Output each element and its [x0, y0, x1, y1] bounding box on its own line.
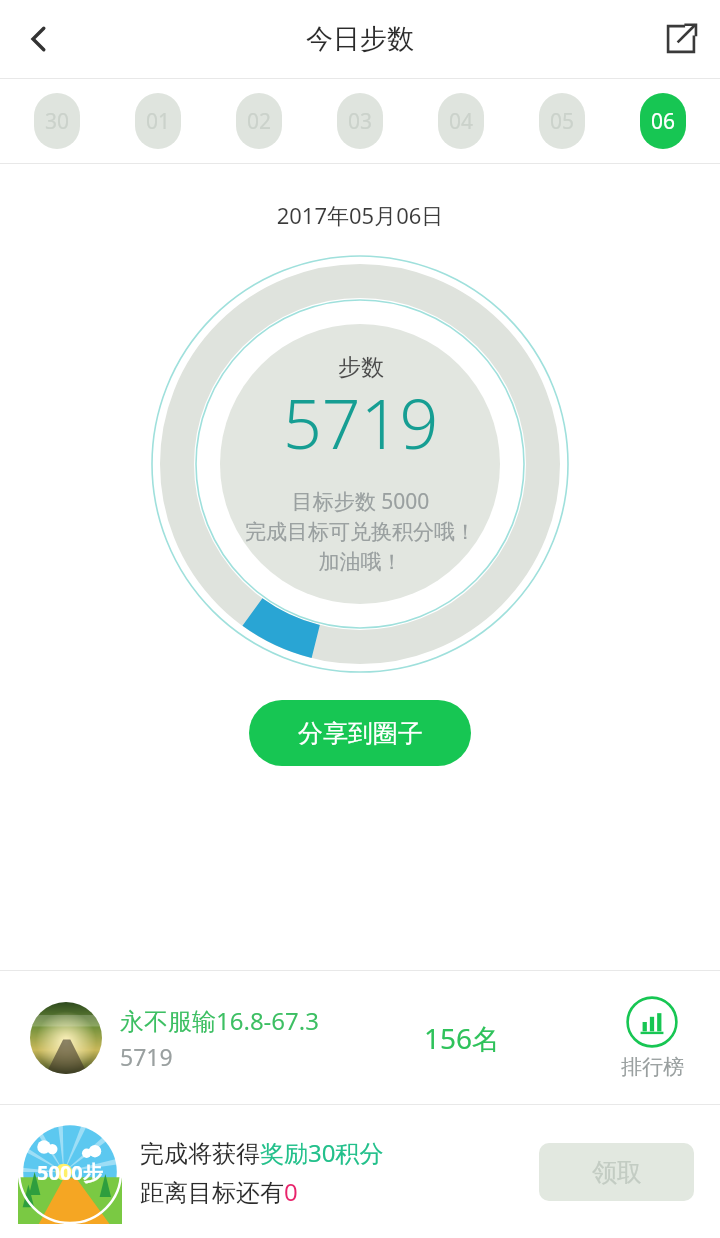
button[interactable]: 02: [236, 93, 282, 149]
staticText: 01: [146, 107, 171, 136]
staticText: 5000步: [37, 1159, 103, 1186]
staticText: 距离目标还有0: [140, 1175, 298, 1208]
staticText: 今日步数: [306, 22, 414, 56]
button[interactable]: 排行榜: [606, 996, 698, 1080]
button[interactable]: 04: [438, 93, 484, 149]
staticText: 04: [449, 107, 474, 136]
button[interactable]: 领取: [539, 1143, 694, 1201]
staticText: 5719: [120, 1041, 173, 1072]
staticText: 分享到圈子: [298, 718, 423, 749]
button[interactable]: 05: [539, 93, 585, 149]
staticText: 02: [247, 107, 272, 136]
staticText: 03: [348, 107, 373, 136]
staticText: 5719: [283, 376, 439, 469]
staticText: 30: [45, 107, 70, 136]
staticText: 156名: [424, 1019, 501, 1057]
staticText: 2017年05月06日: [0, 200, 720, 230]
staticText: 05: [550, 107, 575, 136]
staticText: 目标步数 5000 完成目标可兑换积分哦！ 加油哦！: [245, 487, 476, 576]
button[interactable]: Back: [0, 0, 78, 78]
button[interactable]: 03: [337, 93, 383, 149]
button[interactable]: 30: [34, 93, 80, 149]
button[interactable]: Share: [642, 0, 720, 78]
staticText: 步数: [338, 353, 384, 382]
button[interactable]: 永不服输16.8-67.3: [0, 971, 720, 1104]
staticText: 排行榜: [621, 1054, 684, 1080]
staticText: 完成将获得奖励30积分: [140, 1136, 384, 1169]
button[interactable]: 01: [135, 93, 181, 149]
staticText: 领取: [592, 1157, 642, 1188]
staticText: 06: [651, 107, 676, 136]
button[interactable]: 分享到圈子: [249, 700, 471, 766]
staticText: 永不服输16.8-67.3: [120, 1004, 319, 1037]
button[interactable]: 06: [640, 93, 686, 149]
